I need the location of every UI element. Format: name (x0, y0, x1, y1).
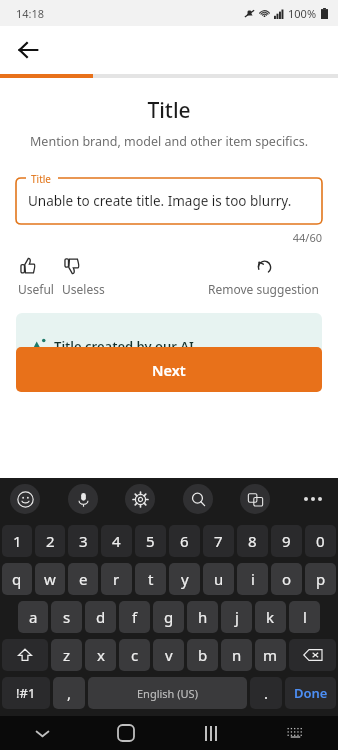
button[interactable]: f (119, 601, 150, 633)
button[interactable]: 4 (101, 525, 132, 557)
staticText: Title (31, 172, 51, 186)
button[interactable]: x (85, 639, 116, 671)
button[interactable]: 1 (2, 525, 32, 557)
button[interactable]: q (2, 563, 32, 595)
staticText: 3 (79, 531, 88, 551)
button[interactable]: Back (8, 30, 48, 70)
button[interactable]: 0 (305, 525, 336, 557)
button[interactable]: w (35, 563, 65, 595)
button[interactable]: , (53, 677, 85, 709)
button[interactable]: Change keyboard (253, 716, 338, 750)
staticText: q (12, 569, 22, 589)
staticText: 5 (146, 531, 155, 551)
staticText: Title (0, 96, 338, 125)
button[interactable]: t (135, 563, 166, 595)
button[interactable]: u (203, 563, 234, 595)
button[interactable]: b (187, 639, 218, 671)
staticText: 14:18 (16, 6, 45, 21)
button[interactable]: . (250, 677, 282, 709)
button[interactable]: o (271, 563, 302, 595)
button[interactable]: Next (16, 347, 322, 392)
staticText: . (264, 683, 269, 703)
staticText: x (97, 645, 105, 665)
button[interactable]: Home (84, 716, 168, 750)
staticText: l (303, 607, 307, 627)
button[interactable]: n (221, 639, 252, 671)
staticText: f (132, 607, 138, 627)
button[interactable]: Remove suggestion (208, 257, 320, 297)
staticText: 44/60 (0, 230, 322, 245)
staticText: u (214, 569, 224, 589)
button[interactable]: Shift (2, 639, 48, 671)
button[interactable]: 8 (237, 525, 268, 557)
staticText: b (198, 645, 208, 665)
staticText: s (63, 607, 71, 627)
button[interactable]: Backspace (289, 639, 336, 671)
button[interactable]: k (255, 601, 286, 633)
staticText: z (63, 645, 71, 665)
button[interactable]: English (US) (88, 677, 247, 709)
staticText: 4 (112, 531, 121, 551)
staticText: , (67, 683, 72, 703)
button[interactable]: 3 (68, 525, 98, 557)
staticText: d (96, 607, 106, 627)
staticText: e (79, 569, 88, 589)
button[interactable]: l (289, 601, 320, 633)
button[interactable]: 7 (203, 525, 234, 557)
staticText: 0 (316, 531, 325, 551)
button[interactable]: p (305, 563, 336, 595)
button[interactable]: m (255, 639, 286, 671)
staticText: j (235, 607, 239, 627)
button[interactable]: e (68, 563, 98, 595)
staticText: Remove suggestion (208, 281, 320, 297)
staticText: a (29, 607, 38, 627)
button[interactable]: Translate (240, 484, 270, 514)
button[interactable]: Title created by our AI (16, 313, 322, 355)
staticText: i (251, 569, 255, 589)
staticText: 2 (46, 531, 55, 551)
button[interactable]: v (153, 639, 184, 671)
button[interactable]: h (187, 601, 218, 633)
button[interactable]: Useful (18, 257, 54, 297)
button[interactable]: Keyboard settings (125, 484, 155, 514)
button[interactable]: 6 (169, 525, 200, 557)
button[interactable]: Useless (62, 257, 105, 297)
button[interactable]: g (153, 601, 184, 633)
staticText: g (164, 607, 174, 627)
button[interactable]: 9 (271, 525, 302, 557)
button[interactable]: Done (285, 677, 336, 709)
button[interactable]: d (85, 601, 116, 633)
button[interactable]: a (18, 601, 48, 633)
button[interactable]: Voice input (68, 484, 98, 514)
button[interactable]: z (51, 639, 82, 671)
staticText: Next (152, 360, 186, 380)
staticText: 7 (214, 531, 223, 551)
button[interactable]: y (169, 563, 200, 595)
button[interactable]: 2 (35, 525, 65, 557)
staticText: t (148, 569, 154, 589)
button[interactable]: More options (298, 484, 328, 514)
staticText: w (44, 569, 56, 589)
button[interactable]: !#1 (2, 677, 50, 709)
staticText: Useless (62, 281, 105, 297)
button[interactable]: Search (183, 484, 213, 514)
button[interactable]: i (237, 563, 268, 595)
staticText: n (232, 645, 242, 665)
staticText: 9 (282, 531, 291, 551)
staticText: r (113, 569, 120, 589)
staticText: Mention brand, model and other item spec… (16, 133, 322, 150)
staticText: p (316, 569, 326, 589)
staticText: h (198, 607, 208, 627)
button[interactable]: Recent apps (168, 716, 253, 750)
button[interactable]: j (221, 601, 252, 633)
button[interactable]: Unable to create title. Image is too blu… (16, 178, 322, 224)
staticText: Done (294, 684, 328, 702)
staticText: v (165, 645, 173, 665)
staticText: 100% (288, 6, 317, 21)
button[interactable]: 5 (135, 525, 166, 557)
button[interactable]: Hide keyboard (0, 716, 84, 750)
button[interactable]: r (101, 563, 132, 595)
button[interactable]: s (51, 601, 82, 633)
button[interactable]: c (119, 639, 150, 671)
button[interactable]: Emoji (10, 484, 40, 514)
